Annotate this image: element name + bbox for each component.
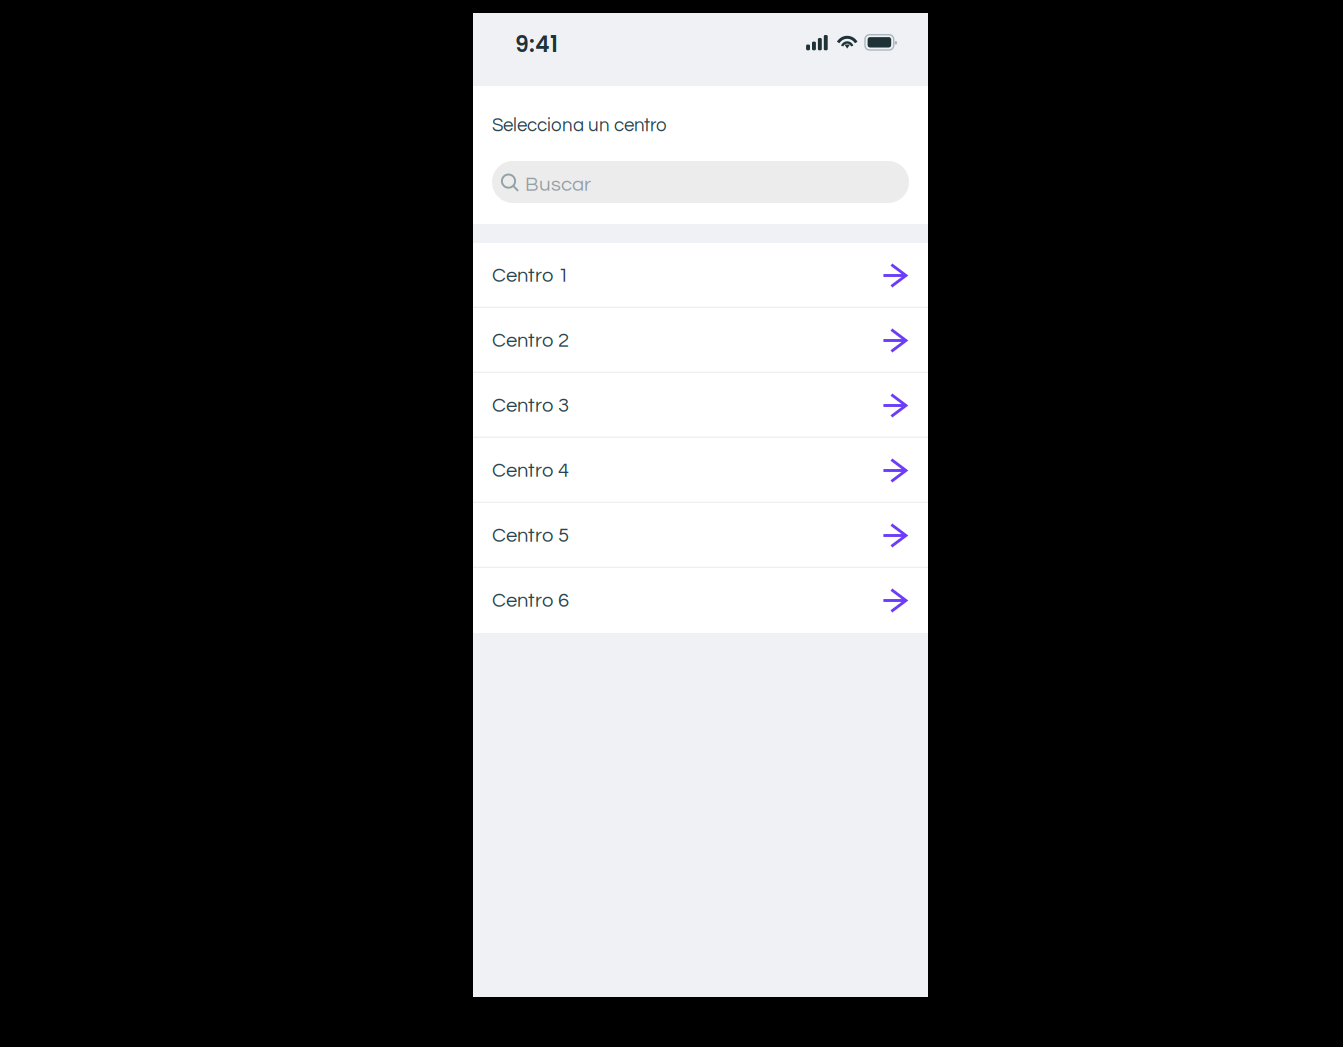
button[interactable]: Centro 6 (473, 568, 928, 633)
button[interactable]: Centro 3 (473, 373, 928, 438)
button[interactable]: Centro 1 (473, 243, 928, 308)
staticText: 9:41 (515, 29, 558, 60)
staticText: Centro 6 (492, 590, 569, 611)
button[interactable]: Centro 5 (473, 503, 928, 568)
staticText: Buscar (525, 174, 591, 195)
staticText: Selecciona un centro (492, 116, 667, 135)
button[interactable]: Buscar (492, 161, 909, 203)
staticText: Centro 3 (492, 395, 569, 416)
button[interactable]: Centro 2 (473, 308, 928, 373)
button[interactable]: Centro 4 (473, 438, 928, 503)
staticText: Centro 4 (492, 460, 569, 481)
staticText: Centro 5 (492, 525, 569, 546)
staticText: Centro 1 (492, 265, 569, 286)
staticText: Centro 2 (492, 330, 569, 351)
